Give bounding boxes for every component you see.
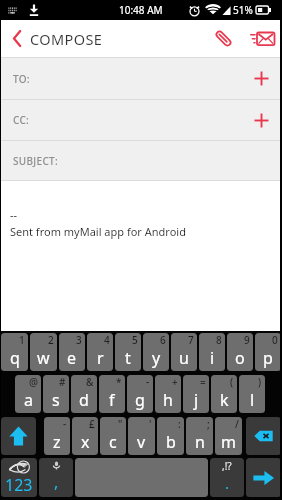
staticText: e (67, 347, 77, 369)
button[interactable]: @ (15, 375, 41, 413)
staticText: # (59, 375, 66, 389)
button[interactable]: 3 (59, 333, 85, 371)
staticText: a (24, 389, 33, 411)
button[interactable]: ) (239, 375, 265, 413)
staticText: TO: (13, 72, 30, 86)
staticText: s (52, 389, 60, 411)
staticText: = (200, 375, 206, 389)
button[interactable]: Enter (246, 458, 281, 497)
staticText: @ (29, 375, 38, 389)
staticText: 51% (233, 3, 253, 17)
button[interactable]: Switch to numbers (1, 458, 37, 497)
staticText: CC: (13, 113, 30, 127)
button[interactable]: TO: (0, 58, 282, 99)
button[interactable]: / (215, 417, 242, 455)
staticText: 3 (76, 333, 82, 347)
button[interactable]: 9 (227, 333, 253, 371)
button[interactable]: 2 (30, 333, 57, 371)
button[interactable]: * (99, 375, 125, 413)
staticText: ,!? (222, 459, 232, 473)
button[interactable]: 5 (115, 333, 141, 371)
button[interactable]: - (44, 417, 70, 455)
staticText: m (221, 431, 236, 453)
staticText: ) (258, 375, 262, 389)
staticText: x (81, 431, 90, 453)
staticText: i (210, 347, 215, 369)
staticText: 2 (48, 333, 54, 347)
staticText: k (220, 389, 229, 411)
staticText: g (135, 389, 145, 411)
staticText: " (118, 417, 123, 431)
staticText: z (53, 431, 61, 453)
button[interactable]: £ (72, 417, 98, 455)
staticText: - (146, 375, 150, 389)
button[interactable]: Back (4, 20, 29, 57)
staticText: / (235, 417, 239, 431)
button[interactable]: ( (211, 375, 237, 413)
button[interactable]: 0 (255, 333, 281, 371)
staticText: o (235, 347, 245, 369)
staticText: 9 (244, 333, 250, 347)
button[interactable]: - (127, 375, 153, 413)
staticText: COMPOSE (30, 29, 103, 49)
button[interactable]: Comma, voice input (39, 458, 73, 497)
button[interactable]: SUBJECT: (0, 141, 282, 180)
staticText: v (137, 431, 146, 453)
staticText: . (225, 473, 230, 493)
button[interactable]: + (155, 375, 181, 413)
button[interactable] (75, 458, 208, 497)
button[interactable]: 4 (87, 333, 113, 371)
button[interactable]: Shift (1, 417, 36, 455)
button[interactable]: # (43, 375, 69, 413)
button[interactable]: ; (186, 417, 213, 455)
button[interactable]: 6 (143, 333, 169, 371)
staticText: 4 (104, 333, 110, 347)
staticText: r (97, 347, 104, 369)
button[interactable]: ' (128, 417, 155, 455)
staticText: , (54, 471, 59, 493)
staticText: 7 (188, 333, 194, 347)
staticText: + (172, 375, 178, 389)
button[interactable]: : (157, 417, 184, 455)
button[interactable]: -- (0, 181, 282, 331)
staticText: w (37, 347, 50, 369)
staticText: -- (10, 207, 18, 222)
staticText: ' (149, 417, 152, 431)
button[interactable]: Backspace (246, 417, 281, 455)
staticText: 6 (160, 333, 166, 347)
staticText: 5 (132, 333, 138, 347)
staticText: l (250, 389, 255, 411)
button[interactable]: Add recipient (240, 100, 282, 140)
button[interactable]: CC: (0, 100, 282, 140)
staticText: Sent from myMail app for Android (10, 224, 186, 239)
button[interactable]: = (183, 375, 209, 413)
staticText: ; (207, 417, 210, 431)
button[interactable]: Attach file (204, 20, 242, 57)
staticText: b (166, 431, 176, 453)
button[interactable]: Send (242, 20, 282, 57)
staticText: y (152, 347, 161, 369)
button[interactable]: 8 (199, 333, 225, 371)
staticText: q (10, 347, 20, 369)
staticText: : (178, 417, 181, 431)
button[interactable]: " (100, 417, 126, 455)
staticText: 10:48 AM (119, 3, 163, 17)
button[interactable]: Period (210, 458, 244, 497)
button[interactable]: 1 (1, 333, 28, 371)
button[interactable]: 7 (171, 333, 197, 371)
staticText: - (63, 417, 67, 431)
staticText: c (109, 431, 117, 453)
staticText: £ (89, 417, 95, 431)
staticText: & (86, 375, 94, 389)
staticText: 8 (216, 333, 222, 347)
staticText: p (263, 347, 273, 369)
staticText: u (179, 347, 189, 369)
staticText: 1 (19, 333, 25, 347)
staticText: 123 (5, 474, 33, 496)
staticText: 0 (272, 333, 278, 347)
staticText: n (195, 431, 205, 453)
staticText: ( (230, 375, 234, 389)
button[interactable]: Add recipient (240, 58, 282, 99)
staticText: h (163, 389, 173, 411)
button[interactable]: & (71, 375, 97, 413)
